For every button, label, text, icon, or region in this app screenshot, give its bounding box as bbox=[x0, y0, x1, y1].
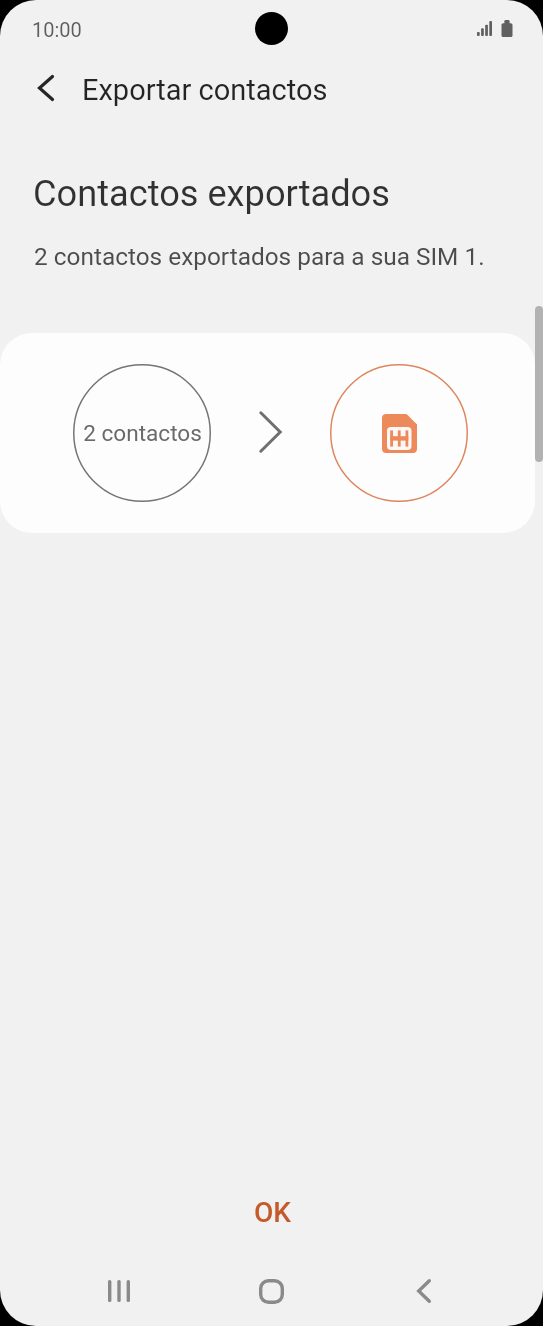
staticText: Contactos exportados bbox=[33, 172, 390, 214]
staticText: Exportar contactos bbox=[82, 73, 328, 107]
button[interactable]: OK bbox=[223, 1184, 321, 1240]
button[interactable]: Recents bbox=[79, 1251, 159, 1326]
button[interactable]: Home bbox=[231, 1251, 311, 1326]
staticText: 2 contactos exportados para a sua SIM 1. bbox=[34, 242, 485, 271]
button[interactable]: Back bbox=[20, 62, 72, 114]
button[interactable]: Back bbox=[384, 1251, 464, 1326]
staticText: 10:00 bbox=[32, 18, 82, 41]
staticText: OK bbox=[254, 1196, 291, 1229]
staticText: 2 contactos bbox=[83, 420, 202, 446]
